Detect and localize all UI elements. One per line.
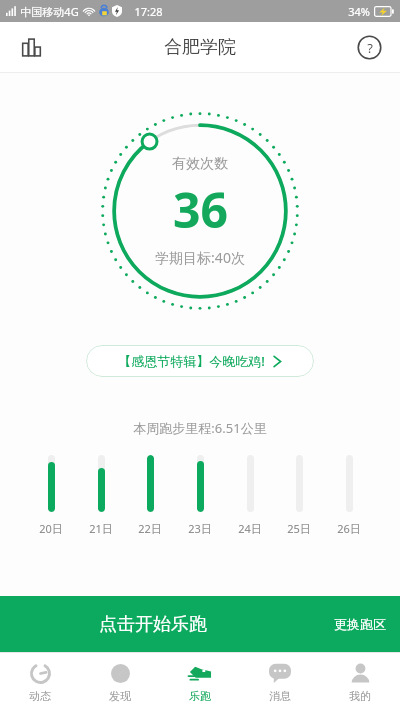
staticText: 23日 (188, 521, 212, 536)
staticText: 我的 (349, 689, 371, 703)
staticText: 合肥学院 (164, 36, 236, 59)
staticText: 34% (348, 4, 370, 19)
staticText: 本周跑步里程:6.51公里 (133, 419, 267, 437)
staticText: 中国移动4G (20, 4, 79, 19)
button[interactable]: 发现 (80, 653, 160, 711)
button[interactable]: 乐跑 (160, 653, 240, 711)
staticText: 20日 (39, 521, 63, 536)
staticText: 24日 (238, 521, 262, 536)
button[interactable]: 【感恩节特辑】今晚吃鸡! (86, 345, 314, 377)
staticText: 点击开始乐跑 (99, 613, 207, 636)
staticText: 25日 (287, 521, 311, 536)
button[interactable]: Statistics (10, 26, 52, 68)
staticText: 22日 (138, 521, 162, 536)
staticText: 17:28 (134, 4, 163, 19)
button[interactable]: 更换跑区 (320, 596, 400, 652)
staticText: 乐跑 (189, 689, 211, 703)
staticText: ? (367, 39, 373, 57)
staticText: 动态 (29, 689, 51, 703)
staticText: 学期目标:40次 (155, 248, 245, 267)
staticText: 消息 (269, 689, 291, 703)
button[interactable]: Help (348, 26, 390, 68)
button[interactable]: 点击开始乐跑 (0, 596, 305, 652)
button[interactable]: 我的 (320, 653, 400, 711)
staticText: 26日 (337, 521, 361, 536)
staticText: 36 (173, 177, 228, 242)
staticText: 更换跑区 (334, 616, 386, 632)
button[interactable]: 消息 (240, 653, 320, 711)
button[interactable]: 动态 (0, 653, 80, 711)
staticText: 【感恩节特辑】今晚吃鸡! (118, 352, 265, 370)
staticText: 有效次数 (172, 155, 228, 173)
staticText: 21日 (89, 521, 113, 536)
staticText: 发现 (109, 689, 131, 703)
